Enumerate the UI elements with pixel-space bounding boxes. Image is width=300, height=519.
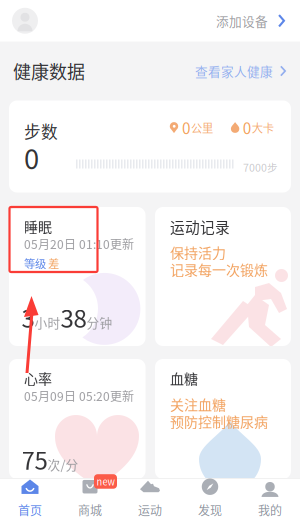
staticText: 我的 (258, 501, 282, 519)
staticText: 差 (48, 255, 59, 271)
staticText: 查看家人健康 (195, 62, 273, 80)
staticText: 运动记录 (170, 216, 230, 237)
staticText: 0 (182, 116, 191, 139)
staticText: 05月09日 05:20更新 (24, 387, 134, 404)
button[interactable]: 查看家人健康 (195, 56, 286, 86)
button[interactable]: 血糖 (155, 359, 291, 479)
staticText: new (96, 475, 114, 488)
staticText: 75 (21, 442, 47, 477)
staticText: 心率 (24, 368, 52, 388)
staticText: 大卡 (252, 119, 274, 136)
button[interactable]: 步数 (9, 100, 291, 192)
staticText: 首页 (18, 501, 42, 519)
staticText: 等级 (24, 255, 46, 271)
button[interactable]: 心率 (9, 359, 145, 479)
staticText: 05月20日 01:10更新 (24, 235, 134, 252)
staticText: 商城 (78, 501, 102, 519)
staticText: 38 (60, 300, 86, 335)
button[interactable]: 发现 (180, 479, 240, 519)
staticText: 记录每一次锻炼 (170, 259, 268, 279)
staticText: 小时 (34, 313, 60, 331)
button[interactable]: 我的 (240, 479, 300, 519)
staticText: 公里 (191, 119, 213, 136)
button[interactable]: 睡眠 (9, 207, 145, 346)
button[interactable]: 运动 (120, 479, 180, 519)
button[interactable]: 添加设备 (216, 7, 285, 35)
staticText: 运动 (138, 501, 162, 519)
staticText: 健康数据 (13, 58, 85, 84)
staticText: 0 (243, 116, 252, 139)
staticText: 步数 (24, 119, 58, 143)
staticText: 血糖 (170, 368, 198, 388)
staticText: 0 (24, 137, 39, 177)
button[interactable]: 运动记录 (155, 207, 291, 346)
button[interactable]: new (60, 479, 120, 519)
staticText: 次/分 (47, 455, 78, 473)
staticText: 3 (21, 300, 34, 335)
staticText: 预防控制糖尿病 (170, 411, 268, 431)
button[interactable]: 首页 (0, 479, 60, 519)
staticText: 睡眠 (24, 216, 52, 236)
staticText: 分钟 (86, 313, 112, 331)
staticText: 7000步 (243, 159, 278, 175)
staticText: 发现 (198, 501, 222, 519)
staticText: 添加设备 (216, 12, 268, 30)
button[interactable]: 个人头像 (12, 8, 38, 34)
staticText: 保持活力 (170, 242, 226, 262)
staticText: 关注血糖 (170, 394, 226, 414)
